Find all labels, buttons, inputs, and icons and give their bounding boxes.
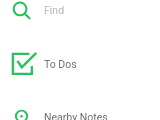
button[interactable]: To Dos <box>0 37 160 90</box>
button[interactable]: Nearby Notes <box>0 90 160 120</box>
staticText: Nearby Notes <box>44 111 108 120</box>
other: To Dos <box>0 37 160 90</box>
staticText: Find <box>44 4 65 16</box>
staticText: To Dos <box>44 58 77 70</box>
other: Find <box>0 0 160 36</box>
button[interactable]: Find <box>0 0 160 36</box>
other: Nearby Notes <box>0 90 160 120</box>
